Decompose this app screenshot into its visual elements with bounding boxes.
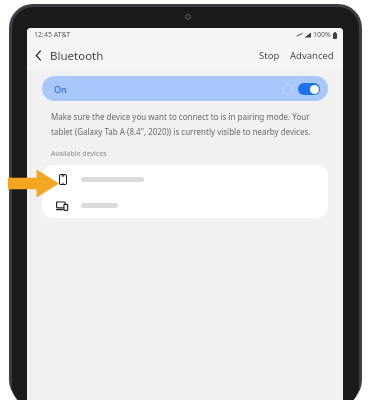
- staticText: Stop: [259, 49, 280, 62]
- staticText: On: [54, 83, 67, 95]
- button[interactable]: Stop: [255, 45, 284, 66]
- staticText: Make sure the device you want to connect…: [51, 111, 310, 122]
- other: Highlight arrow pointing to device: [8, 169, 59, 198]
- button[interactable]: Advanced: [286, 45, 338, 66]
- button[interactable]: [42, 166, 328, 192]
- staticText: 100%: [313, 30, 331, 40]
- button[interactable]: [42, 192, 328, 218]
- button[interactable]: Bluetooth on toggle: [298, 83, 320, 95]
- staticText: Available devices: [51, 149, 107, 159]
- button[interactable]: On: [42, 76, 328, 101]
- staticText: 12:45 AT&T: [34, 30, 71, 40]
- staticText: tablet (Galaxy Tab A (8.4", 2020)) is cu…: [51, 126, 311, 137]
- staticText: Bluetooth: [50, 48, 104, 64]
- staticText: Advanced: [290, 49, 334, 62]
- button[interactable]: Back: [27, 44, 50, 67]
